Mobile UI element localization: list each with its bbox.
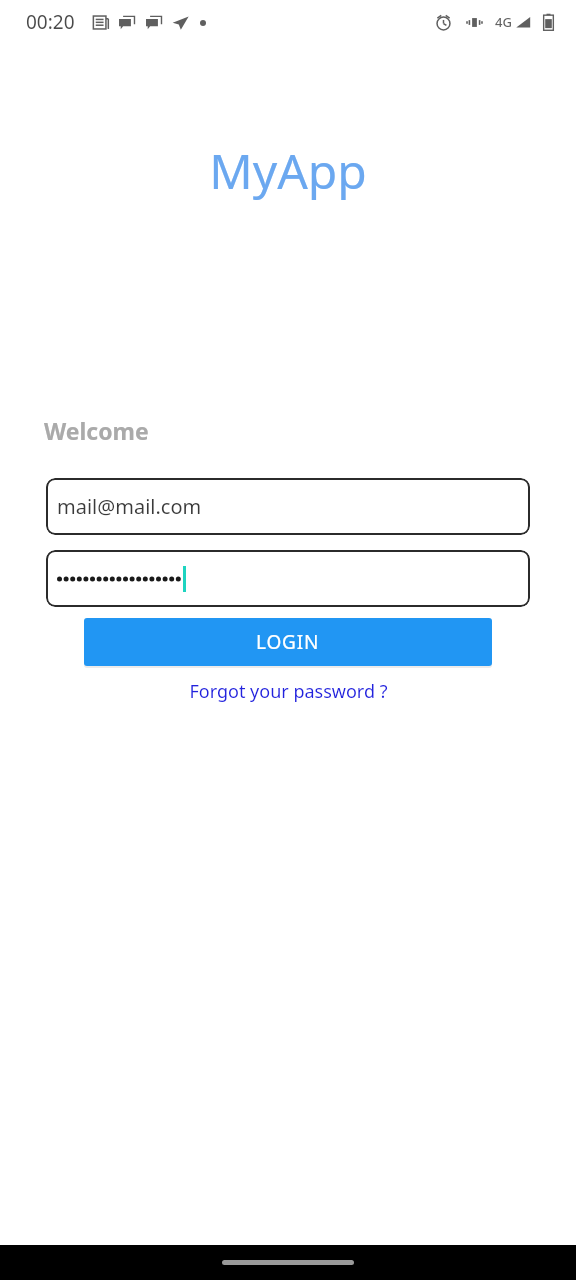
button[interactable]: LOGIN: [84, 618, 492, 666]
staticText: LOGIN: [256, 629, 320, 655]
staticText: Welcome: [44, 415, 149, 446]
staticText: 00:20: [26, 9, 75, 35]
staticText: Forgot your password ?: [189, 679, 388, 704]
button[interactable]: mail@mail.com: [46, 478, 530, 535]
button[interactable]: [46, 550, 530, 607]
staticText: mail@mail.com: [57, 493, 202, 520]
staticText: MyApp: [0, 138, 576, 203]
button[interactable]: Forgot your password ?: [0, 679, 576, 704]
staticText: 4G: [495, 13, 512, 31]
